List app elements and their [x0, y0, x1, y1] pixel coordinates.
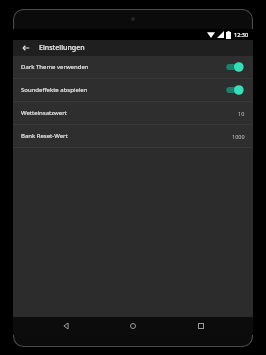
staticText: 1000 [232, 133, 245, 140]
staticText: 12:30 [234, 31, 249, 38]
button[interactable]: Umschalten [225, 84, 245, 96]
button[interactable]: Startbildschirm [118, 317, 148, 335]
button[interactable]: Bank Reset-Wert [13, 125, 253, 147]
button[interactable]: Zurück [51, 317, 81, 335]
button[interactable]: Zurück [19, 41, 33, 55]
button[interactable]: Dark Theme verwenden [13, 56, 253, 78]
staticText: Bank Reset-Wert [21, 132, 232, 140]
staticText: Dark Theme verwenden [21, 63, 225, 71]
button[interactable]: Umschalten [225, 61, 245, 73]
button[interactable]: Übersicht [186, 317, 216, 335]
button[interactable]: Soundeffekte abspielen [13, 79, 253, 101]
staticText: Wetteinsatzwert [21, 109, 238, 117]
staticText: Soundeffekte abspielen [21, 86, 225, 94]
staticText: 10 [238, 110, 245, 117]
button[interactable]: Wetteinsatzwert [13, 102, 253, 124]
staticText: Einstellungen [39, 43, 85, 53]
